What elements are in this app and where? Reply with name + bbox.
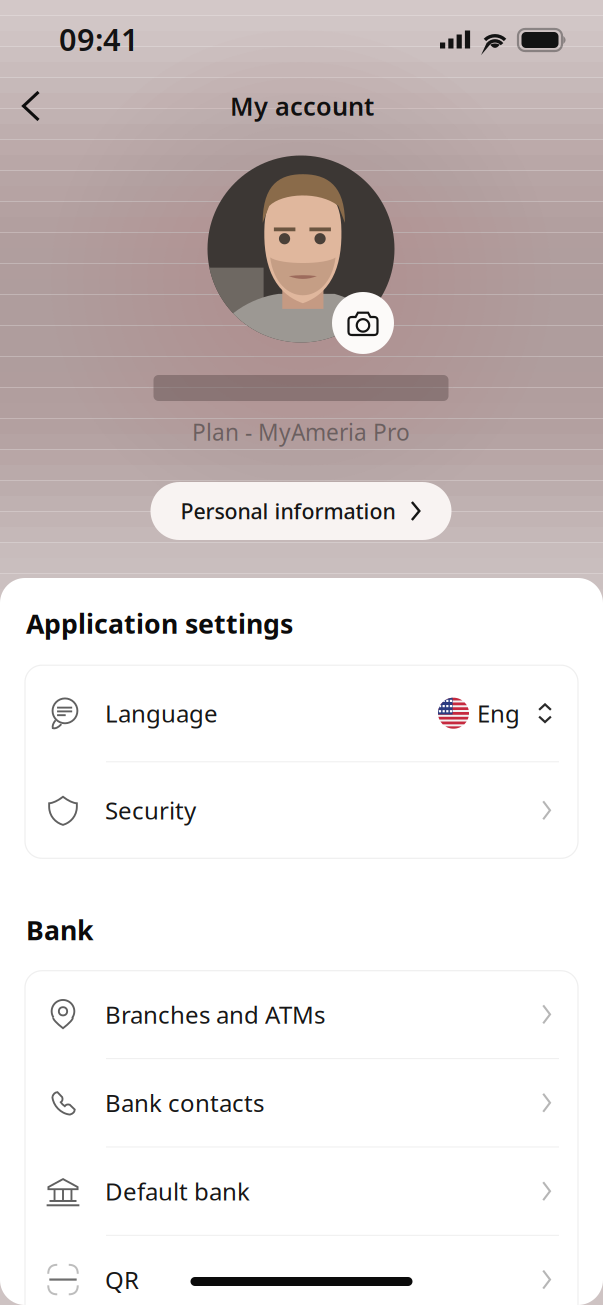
staticText: Language	[105, 697, 218, 729]
button[interactable]: Branches and ATMs	[25, 971, 578, 1058]
button[interactable]: QR	[25, 1236, 578, 1305]
button[interactable]: Default bank	[25, 1147, 578, 1235]
staticText: My account	[230, 89, 374, 123]
staticText: Default bank	[105, 1175, 250, 1207]
staticText: Personal information	[180, 497, 395, 525]
staticText: Plan - MyAmeria Pro	[192, 417, 410, 447]
staticText: Bank	[26, 912, 94, 948]
staticText: 09:41	[59, 19, 139, 59]
staticText: Application settings	[26, 606, 293, 641]
button[interactable]: Bank contacts	[25, 1059, 578, 1146]
staticText: Bank contacts	[105, 1087, 264, 1119]
staticText: Security	[105, 794, 196, 826]
button[interactable]: Back	[3, 79, 58, 133]
button[interactable]: Language	[25, 665, 578, 761]
staticText: Eng	[477, 697, 520, 729]
button[interactable]: Security	[25, 762, 578, 858]
button[interactable]: Change profile photo	[332, 292, 394, 354]
staticText: Branches and ATMs	[105, 998, 325, 1030]
staticText: QR	[105, 1264, 139, 1295]
button[interactable]: Personal information	[150, 482, 451, 540]
